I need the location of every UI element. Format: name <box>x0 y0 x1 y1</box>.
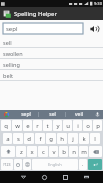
staticText: x <box>30 148 34 156</box>
button[interactable]: v <box>49 146 58 157</box>
button[interactable]: English <box>32 159 78 170</box>
staticText: c <box>42 148 45 156</box>
staticText: s <box>17 135 20 143</box>
button[interactable]: g <box>46 133 56 144</box>
button[interactable]: t <box>43 120 52 131</box>
staticText: r <box>36 122 39 130</box>
staticText: veil <box>75 111 83 118</box>
staticText: w <box>15 122 20 130</box>
button[interactable]: Delete <box>89 146 102 157</box>
staticText: English <box>48 162 62 167</box>
button[interactable]: Shift <box>1 146 15 157</box>
button[interactable]: Emoji <box>14 159 22 170</box>
button[interactable]: sepl <box>13 110 38 119</box>
staticText: k <box>82 135 86 143</box>
button[interactable]: q <box>1 120 11 131</box>
staticText: o <box>86 122 90 130</box>
button[interactable]: swollen <box>0 48 103 59</box>
staticText: g <box>49 135 53 143</box>
button[interactable]: n <box>69 146 78 157</box>
button[interactable]: z <box>16 146 26 157</box>
button[interactable]: sel <box>39 110 65 119</box>
button[interactable]: a <box>3 133 12 144</box>
staticText: j <box>72 135 74 143</box>
button[interactable]: Voice input <box>92 110 103 119</box>
button[interactable]: u <box>63 120 72 131</box>
button[interactable]: sell <box>0 37 103 48</box>
button[interactable]: sepl <box>3 23 83 34</box>
staticText: m <box>81 148 87 156</box>
staticText: a <box>6 135 10 143</box>
button[interactable]: e <box>23 120 32 131</box>
button[interactable]: d <box>24 133 34 144</box>
button[interactable]: m <box>79 146 88 157</box>
staticText: d <box>27 135 31 143</box>
staticText: e <box>26 122 30 130</box>
button[interactable]: Google <box>0 110 13 119</box>
button[interactable]: s <box>13 133 23 144</box>
staticText: sepl <box>6 25 18 33</box>
button[interactable]: k <box>79 133 89 144</box>
staticText: ?123 <box>3 162 11 167</box>
staticText: swollen <box>3 50 23 57</box>
button[interactable]: x <box>27 146 37 157</box>
staticText: selling <box>3 61 20 68</box>
staticText: i <box>77 122 79 130</box>
staticText: . <box>82 161 84 168</box>
button[interactable]: Change language <box>23 159 31 170</box>
staticText: u <box>66 122 70 130</box>
staticText: l <box>94 135 96 143</box>
button[interactable]: Hide keyboard <box>13 171 34 183</box>
button[interactable]: o <box>83 120 92 131</box>
button[interactable]: veil <box>66 110 92 119</box>
button[interactable]: y <box>53 120 62 131</box>
staticText: belt <box>3 72 13 79</box>
button[interactable]: h <box>57 133 67 144</box>
button[interactable]: belt <box>0 70 103 81</box>
button[interactable]: r <box>33 120 42 131</box>
button[interactable]: Recents <box>55 171 76 183</box>
button[interactable]: ?123 <box>1 159 13 170</box>
staticText: y <box>56 122 60 130</box>
staticText: 9:30 <box>94 1 102 6</box>
staticText: sel <box>49 111 56 118</box>
button[interactable]: c <box>38 146 48 157</box>
button[interactable]: Switch keyboard <box>76 171 97 183</box>
button[interactable]: i <box>73 120 82 131</box>
staticText: z <box>20 148 23 156</box>
staticText: v <box>52 148 56 156</box>
button[interactable]: w <box>12 120 22 131</box>
staticText: sepl <box>21 111 31 118</box>
staticText: t <box>46 122 49 130</box>
button[interactable]: Enter <box>88 159 102 170</box>
button[interactable]: Speak word <box>87 22 100 35</box>
button[interactable]: . <box>79 159 87 170</box>
staticText: f <box>39 135 42 143</box>
button[interactable]: selling <box>0 59 103 70</box>
staticText: h <box>60 135 64 143</box>
staticText: sell <box>3 39 12 46</box>
staticText: p <box>96 122 100 130</box>
staticText: q <box>4 122 8 130</box>
button[interactable]: p <box>93 120 102 131</box>
button[interactable]: f <box>35 133 45 144</box>
staticText: Spelling Helper <box>14 10 57 18</box>
staticText: b <box>62 148 66 156</box>
button[interactable]: b <box>59 146 68 157</box>
button[interactable]: l <box>90 133 100 144</box>
button[interactable]: Home <box>34 171 55 183</box>
button[interactable]: j <box>68 133 78 144</box>
staticText: n <box>72 148 76 156</box>
